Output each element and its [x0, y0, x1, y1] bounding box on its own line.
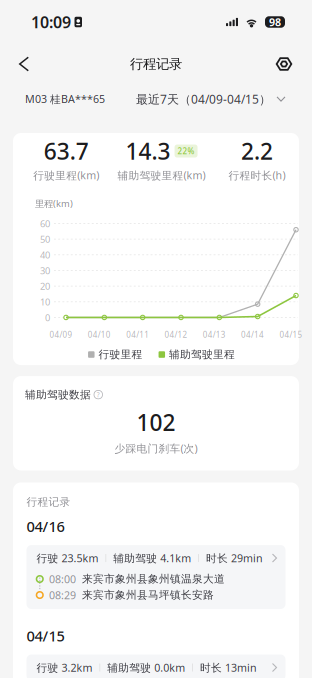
staticText: 辅助驾驶数据	[25, 388, 91, 401]
staticText: 辅助驾驶 4.1km	[113, 551, 191, 565]
staticText: 行程记录	[130, 56, 182, 72]
staticText: 04/13	[203, 329, 226, 340]
staticText: 60	[40, 217, 50, 230]
staticText: 行程记录	[26, 495, 70, 509]
staticText: 98	[269, 15, 281, 29]
staticText: 08:00	[49, 572, 76, 586]
staticText: 里程(km)	[35, 197, 73, 210]
staticText: 30	[40, 264, 50, 277]
staticText: 行程时长(h)	[228, 168, 285, 182]
button[interactable]: 行驶 23.5km	[26, 545, 285, 609]
staticText: ?	[97, 390, 100, 399]
staticText: 40	[40, 249, 50, 261]
staticText: 04/15	[279, 329, 302, 340]
staticText: 辅助驾驶 0.0km	[107, 660, 185, 675]
staticText: 少踩电门刹车(次)	[114, 441, 197, 455]
staticText: 行驶里程	[99, 348, 143, 361]
staticText: 10	[40, 296, 50, 308]
staticText: 行驶 23.5km	[36, 551, 98, 565]
staticText: 2.2	[241, 136, 273, 166]
button[interactable]: 最近7天（04/09-04/15）	[136, 91, 285, 107]
staticText: 行驶 3.2km	[36, 660, 92, 675]
staticText: 04/09	[49, 329, 72, 340]
staticText: 最近7天（04/09-04/15）	[136, 91, 271, 107]
staticText: 时长 29min	[206, 551, 263, 565]
staticText: 04/14	[241, 329, 264, 340]
staticText: 63.7	[44, 136, 89, 166]
staticText: 来宾市象州县象州镇温泉大道	[82, 572, 225, 586]
button[interactable]: 行驶 3.2km	[26, 654, 285, 678]
button[interactable]: 返回	[7, 44, 41, 84]
button[interactable]: M03 桂BA***65	[25, 92, 105, 106]
staticText: 04/16	[26, 517, 64, 536]
staticText: M03 桂BA***65	[25, 92, 105, 106]
staticText: 行驶里程(km)	[33, 168, 99, 182]
staticText: 22%	[178, 146, 195, 156]
staticText: 102	[136, 407, 175, 437]
staticText: 04/11	[126, 329, 149, 340]
staticText: 14.3	[126, 136, 171, 166]
staticText: 时长 13min	[200, 660, 257, 675]
staticText: 08:29	[49, 588, 76, 602]
button[interactable]: 设置	[267, 44, 301, 84]
staticText: 10:09	[31, 11, 71, 33]
staticText: 0	[45, 311, 50, 324]
staticText: 20	[40, 280, 50, 292]
staticText: 04/15	[26, 626, 64, 645]
staticText: 50	[40, 233, 50, 245]
staticText: 来宾市象州县马坪镇长安路	[82, 588, 214, 602]
staticText: 04/12	[164, 329, 187, 340]
staticText: 辅助驾驶里程	[169, 348, 235, 361]
staticText: 04/10	[88, 329, 111, 340]
staticText: 辅助驾驶里程(km)	[118, 168, 206, 182]
